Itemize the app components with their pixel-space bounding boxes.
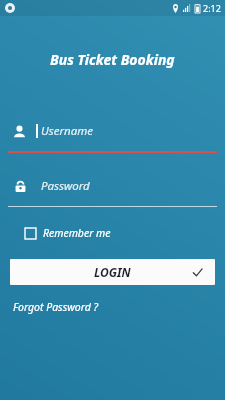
- staticText: Bus Ticket Booking: [50, 50, 175, 69]
- staticText: Forgot Password ?: [13, 300, 98, 314]
- button[interactable]: LOGIN: [10, 259, 215, 285]
- staticText: Username: [41, 123, 94, 139]
- staticText: LOGIN: [94, 264, 131, 280]
- button[interactable]: Username: [0, 116, 225, 146]
- button[interactable]: Remember me: [0, 224, 121, 242]
- staticText: Password: [41, 178, 90, 194]
- other: Submit: [192, 267, 203, 278]
- other: Password: [14, 180, 27, 193]
- other: Username: [13, 125, 26, 138]
- button[interactable]: Password: [0, 171, 225, 201]
- staticText: Remember me: [43, 226, 111, 240]
- staticText: 2:12: [203, 2, 221, 14]
- button[interactable]: Forgot Password ?: [0, 298, 106, 316]
